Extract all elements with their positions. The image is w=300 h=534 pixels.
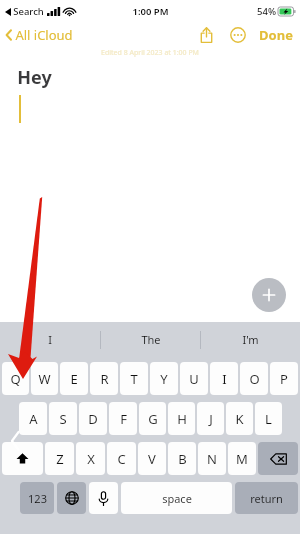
button[interactable]: H — [168, 402, 195, 435]
button[interactable]: space — [121, 482, 232, 514]
button[interactable]: S — [49, 402, 77, 435]
staticText: return — [250, 491, 283, 506]
staticText: R — [100, 370, 109, 388]
staticText: I'm — [242, 332, 259, 347]
button[interactable]: I — [0, 322, 100, 357]
button[interactable]: return — [235, 482, 298, 514]
button[interactable]: I'm — [201, 322, 300, 357]
staticText: T — [130, 370, 138, 388]
staticText: The — [141, 332, 161, 347]
staticText: Hey — [17, 65, 52, 90]
button[interactable]: F — [109, 402, 137, 435]
staticText: Edited 8 April 2023 at 1:00 PM — [101, 48, 199, 58]
button[interactable]: X — [76, 442, 105, 475]
staticText: A — [29, 410, 38, 428]
staticText: O — [249, 370, 260, 388]
button[interactable]: Shift — [2, 442, 43, 475]
button[interactable]: E — [60, 362, 88, 395]
staticText: Z — [56, 450, 64, 468]
staticText: C — [117, 450, 126, 468]
button[interactable]: Change keyboard — [57, 482, 86, 514]
button[interactable]: M — [228, 442, 256, 475]
button[interactable]: Dictate — [89, 482, 118, 514]
button[interactable]: V — [138, 442, 166, 475]
button[interactable]: I — [210, 362, 238, 395]
staticText: D — [88, 410, 98, 428]
staticText: B — [178, 450, 187, 468]
staticText: All iCloud — [15, 26, 73, 44]
button[interactable]: T — [120, 362, 148, 395]
staticText: V — [148, 450, 156, 468]
staticText: J — [209, 410, 213, 428]
staticText: L — [265, 410, 272, 428]
staticText: X — [87, 450, 95, 468]
button[interactable]: Done — [257, 22, 295, 48]
staticText: Q — [10, 370, 21, 388]
staticText: P — [280, 370, 288, 388]
button[interactable]: D — [79, 402, 107, 435]
staticText: 123 — [28, 491, 47, 506]
staticText: Search — [13, 5, 44, 18]
button[interactable]: Y — [150, 362, 178, 395]
staticText: N — [207, 450, 217, 468]
button[interactable]: More options — [225, 22, 251, 48]
button[interactable]: K — [226, 402, 253, 435]
button[interactable]: R — [90, 362, 118, 395]
staticText: U — [189, 370, 199, 388]
button[interactable]: L — [255, 402, 282, 435]
staticText: 54% — [257, 5, 276, 18]
staticText: space — [162, 491, 192, 506]
button[interactable]: W — [31, 362, 58, 395]
staticText: Done — [259, 26, 293, 44]
staticText: H — [177, 410, 187, 428]
button[interactable]: A — [19, 402, 47, 435]
button[interactable]: C — [107, 442, 136, 475]
staticText: I — [48, 332, 52, 347]
button[interactable]: Add attachment — [252, 278, 286, 312]
staticText: I — [222, 370, 227, 388]
staticText: W — [38, 370, 51, 388]
button[interactable]: P — [270, 362, 298, 395]
button[interactable]: All iCloud — [0, 22, 79, 48]
button[interactable]: 123 — [20, 482, 54, 514]
staticText: G — [148, 410, 158, 428]
staticText: F — [120, 410, 127, 428]
button[interactable]: N — [198, 442, 226, 475]
button[interactable]: B — [168, 442, 196, 475]
staticText: 1:00 PM — [132, 5, 169, 18]
staticText: S — [59, 410, 67, 428]
button[interactable]: Q — [2, 362, 29, 395]
button[interactable]: Share — [193, 22, 219, 48]
button[interactable]: O — [240, 362, 268, 395]
button[interactable]: G — [139, 402, 166, 435]
button[interactable]: Previous — [6, 428, 24, 454]
staticText: E — [70, 370, 78, 388]
button[interactable]: U — [180, 362, 208, 395]
staticText: Y — [160, 370, 168, 388]
staticText: M — [236, 450, 248, 468]
button[interactable]: Backspace — [258, 442, 298, 475]
button[interactable]: Z — [45, 442, 74, 475]
button[interactable]: The — [101, 322, 200, 357]
staticText: K — [235, 410, 244, 428]
button[interactable]: J — [197, 402, 224, 435]
